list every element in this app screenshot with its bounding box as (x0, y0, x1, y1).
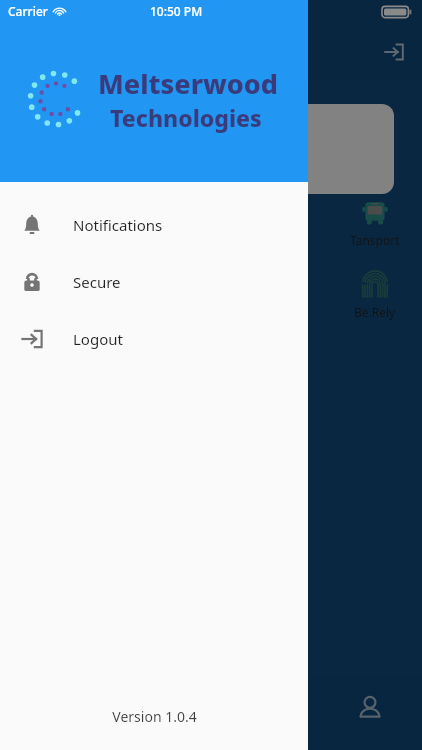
staticText: Notifications (73, 215, 163, 235)
staticText: Logout (73, 329, 123, 349)
button[interactable]: Be.Rely (354, 270, 396, 320)
staticText: Tansport (350, 232, 400, 248)
button[interactable]: Logout (0, 310, 308, 367)
button[interactable] (308, 0, 422, 750)
button[interactable]: Profile (346, 684, 394, 732)
button[interactable]: Tansport (350, 198, 400, 248)
staticText: Version 1.0.4 (112, 707, 197, 726)
staticText: Meltserwood (98, 65, 279, 102)
button[interactable]: Notifications (0, 196, 308, 253)
button[interactable]: Logout (374, 32, 414, 72)
staticText: Technologies (110, 102, 262, 133)
staticText: Carrier (8, 3, 48, 19)
staticText: 10:50 PM (150, 3, 203, 19)
button[interactable]: Secure (0, 253, 308, 310)
staticText: Be.Rely (354, 304, 396, 320)
staticText: Secure (73, 272, 121, 292)
